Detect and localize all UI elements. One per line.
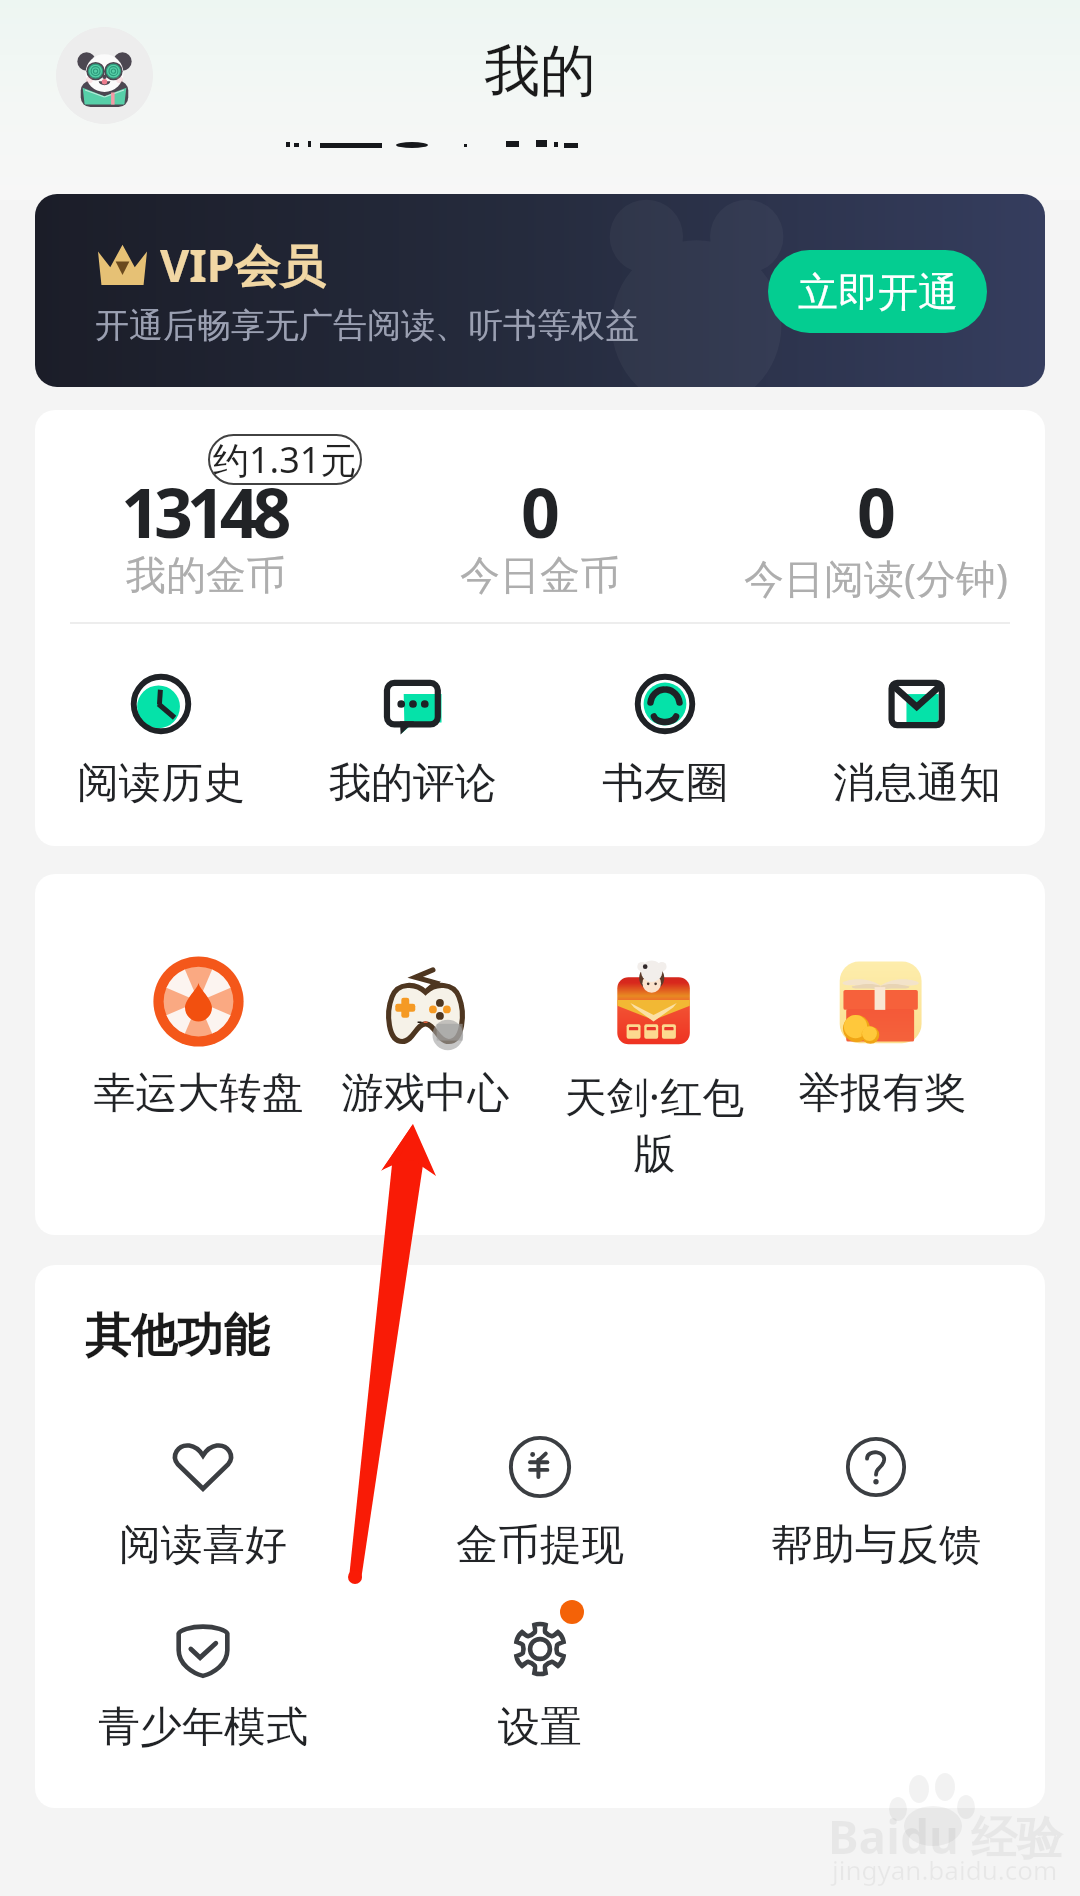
button[interactable]: 消息通知: [791, 673, 1043, 810]
button[interactable]: 立即开通: [768, 250, 987, 333]
staticText: 13148: [121, 465, 286, 558]
button[interactable]: 金币提现: [372, 1435, 708, 1572]
staticText: 开通后畅享无广告阅读、听书等权益: [95, 304, 639, 347]
staticText: 阅读历史: [77, 757, 245, 810]
staticText: 其他功能: [85, 1307, 269, 1365]
staticText: 幸运大转盘: [91, 1067, 306, 1120]
staticText: 今日阅读(分钟): [744, 550, 1008, 605]
staticText: 举报有奖: [775, 1067, 990, 1120]
staticText: 青少年模式: [98, 1701, 308, 1754]
button[interactable]: 幸运大转盘: [85, 955, 311, 1120]
staticText: 书友圈: [602, 757, 728, 810]
staticText: 消息通知: [833, 757, 1001, 810]
staticText: 设置: [498, 1701, 582, 1754]
button[interactable]: 设置: [372, 1617, 708, 1754]
staticText: 我的: [484, 36, 596, 107]
staticText: 我的金币: [126, 550, 286, 600]
staticText: 阅读喜好: [119, 1519, 287, 1572]
button[interactable]: VIP会员: [35, 194, 1045, 387]
staticText: 天剑·红包版: [547, 1067, 762, 1180]
staticText: VIP会员: [160, 234, 325, 295]
button[interactable]: 举报有奖: [769, 955, 995, 1120]
staticText: 0: [521, 465, 560, 558]
button[interactable]: 青少年模式: [35, 1617, 371, 1754]
button[interactable]: 阅读历史: [35, 673, 287, 810]
staticText: 立即开通: [798, 267, 958, 317]
staticText: 帮助与反馈: [771, 1519, 981, 1572]
button[interactable]: 书友圈: [539, 673, 791, 810]
button[interactable]: 帮助与反馈: [708, 1435, 1044, 1572]
staticText: jingyan.baidu.com: [832, 1852, 1058, 1887]
staticText: 我的评论: [329, 757, 497, 810]
button[interactable]: 阅读喜好: [35, 1435, 371, 1572]
staticText: 游戏中心: [318, 1067, 533, 1120]
staticText: Baidu 经验: [828, 1805, 1063, 1868]
staticText: 今日金币: [460, 550, 620, 600]
button[interactable]: Profile avatar: [56, 27, 153, 124]
button[interactable]: 游戏中心: [312, 955, 538, 1120]
button[interactable]: 我的评论: [287, 673, 539, 810]
button[interactable]: 天剑·红包版: [541, 955, 767, 1180]
staticText: 金币提现: [456, 1519, 624, 1572]
staticText: 约1.31元: [213, 435, 357, 484]
staticText: 0: [857, 465, 896, 558]
